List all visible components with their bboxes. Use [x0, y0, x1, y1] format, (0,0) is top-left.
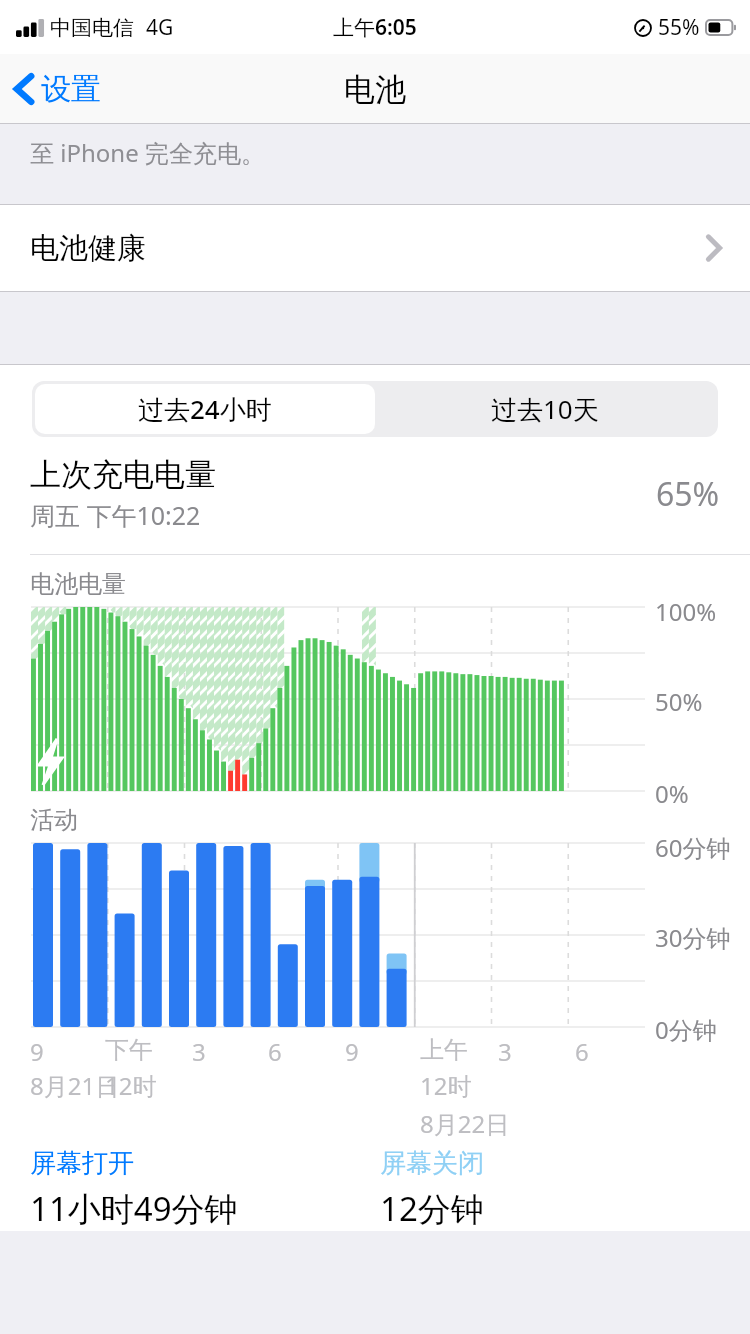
- staticText: 3: [192, 1035, 206, 1068]
- staticText: 过去24小时: [138, 391, 272, 427]
- staticText: 周五 下午10:22: [30, 498, 201, 532]
- staticText: 65%: [656, 472, 720, 516]
- staticText: 上次充电电量: [30, 455, 216, 494]
- staticText: 8月21日: [30, 1069, 120, 1102]
- staticText: 电池电量: [30, 569, 126, 599]
- staticText: 屏幕打开: [30, 1147, 134, 1180]
- staticText: 50%: [655, 685, 703, 718]
- staticText: 屏幕关闭: [380, 1147, 484, 1180]
- staticText: 设置: [41, 70, 101, 108]
- staticText: 6: [268, 1035, 282, 1068]
- staticText: 活动: [30, 805, 78, 835]
- staticText: 6: [575, 1035, 589, 1068]
- staticText: 至 iPhone 完全充电。: [30, 136, 265, 169]
- staticText: 12分钟: [380, 1186, 484, 1231]
- staticText: 过去10天: [491, 391, 599, 427]
- staticText: 9: [30, 1035, 44, 1068]
- staticText: 12时: [420, 1069, 472, 1102]
- staticText: 电池: [344, 70, 406, 109]
- button[interactable]: 电池健康: [0, 205, 750, 291]
- staticText: 0分钟: [655, 1013, 717, 1046]
- staticText: 8月22日: [420, 1107, 510, 1140]
- staticText: 60分钟: [655, 831, 731, 864]
- staticText: 中国电信: [50, 15, 134, 41]
- staticText: 上午6:05: [333, 13, 417, 42]
- staticText: 0%: [655, 777, 689, 810]
- staticText: 9: [345, 1035, 359, 1068]
- staticText: 4G: [146, 13, 174, 42]
- button[interactable]: 设置: [0, 62, 117, 116]
- staticText: 下午: [105, 1035, 153, 1065]
- button[interactable]: 过去24小时: [35, 384, 375, 434]
- staticText: 上午: [420, 1035, 468, 1065]
- staticText: 3: [498, 1035, 512, 1068]
- staticText: 55%: [658, 13, 700, 42]
- staticText: 12时: [105, 1069, 157, 1102]
- staticText: 100%: [655, 595, 717, 628]
- button[interactable]: 过去10天: [375, 384, 715, 434]
- staticText: 30分钟: [655, 921, 731, 954]
- staticText: 11小时49分钟: [30, 1186, 238, 1231]
- staticText: 电池健康: [30, 230, 146, 267]
